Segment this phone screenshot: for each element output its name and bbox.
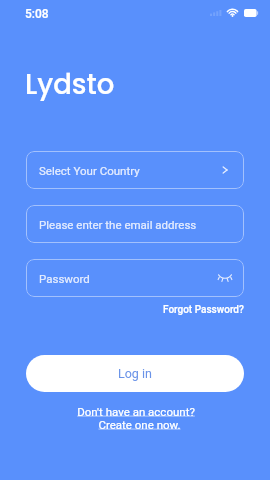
staticText: Please enter the email address	[39, 218, 197, 231]
button[interactable]: Log in	[26, 355, 244, 392]
staticText: Lydsto	[25, 65, 115, 103]
staticText: Forgot Password?	[163, 304, 244, 316]
button[interactable]: Password	[26, 259, 244, 297]
button[interactable]: Forgot Password?	[159, 300, 248, 320]
staticText: Create one now.	[98, 418, 181, 431]
staticText: 5:08	[25, 7, 49, 21]
staticText: Password	[39, 272, 90, 285]
other: Show password	[218, 273, 232, 283]
staticText: Don't have an account?	[77, 405, 195, 418]
button[interactable]: Select Your Country	[26, 151, 244, 189]
staticText: Select Your Country	[39, 164, 140, 177]
other: Select country	[220, 165, 230, 175]
button[interactable]: Don't have an account?	[1, 405, 270, 431]
button[interactable]: Please enter the email address	[26, 205, 244, 243]
staticText: Log in	[118, 366, 152, 381]
